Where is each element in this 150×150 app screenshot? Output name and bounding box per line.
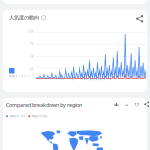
staticText: keyword one <box>10 114 27 118</box>
button[interactable]: Share <box>144 101 149 107</box>
staticText: keyword two <box>32 114 48 118</box>
button[interactable]: Embed <box>134 101 139 107</box>
button[interactable]: Compared breakdown by region <box>5 101 83 109</box>
staticText: Compared breakdown by region <box>6 101 82 109</box>
button[interactable]: Share <box>136 15 143 22</box>
staticText: 50 <box>30 55 34 58</box>
staticText: 人気度の動向 <box>9 14 39 21</box>
staticText: 75 <box>30 42 34 46</box>
button[interactable]: Chart view <box>114 101 119 107</box>
staticText: 25 <box>30 67 34 71</box>
button[interactable]: 人気度の動向 <box>8 14 47 21</box>
staticText: 検索キーワード <box>9 74 30 78</box>
button[interactable]: Sort <box>124 101 129 107</box>
staticText: 100 <box>28 30 34 33</box>
